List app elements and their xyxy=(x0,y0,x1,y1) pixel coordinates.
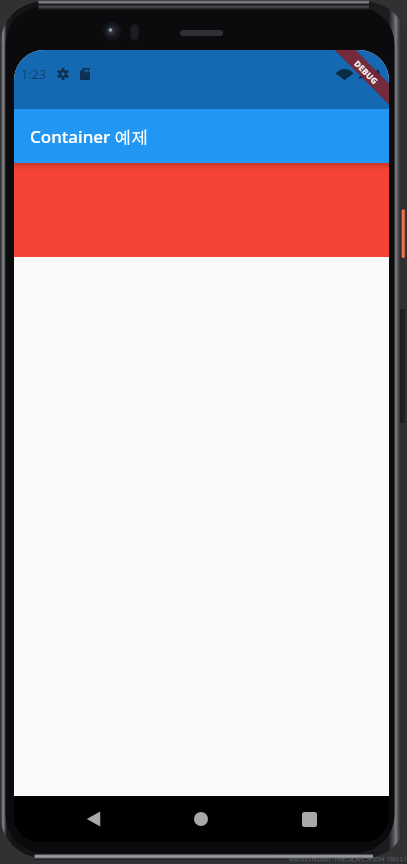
staticText: Android Emulator - Pixel_3a_API_34:5554 … xyxy=(289,856,407,863)
button[interactable]: Back xyxy=(64,796,122,842)
staticText: 1:23 xyxy=(21,66,46,83)
button[interactable]: Home xyxy=(172,796,230,842)
staticText: DEBUG xyxy=(352,58,381,87)
button[interactable]: Recent apps xyxy=(280,796,338,842)
staticText: Container 예제 xyxy=(30,125,149,148)
